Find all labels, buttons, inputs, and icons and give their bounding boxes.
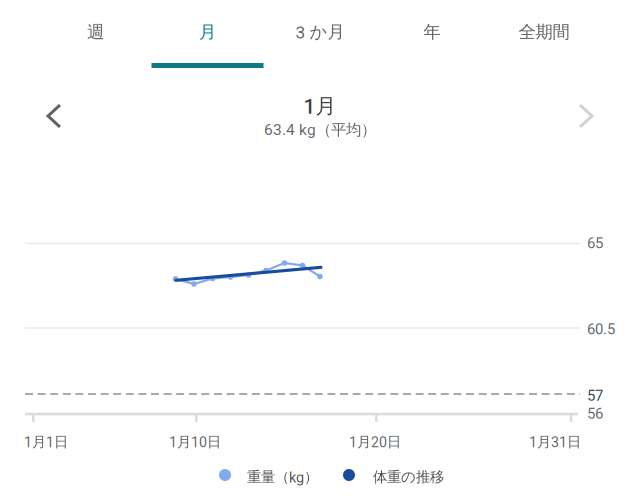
staticText: 体重の推移 — [373, 468, 444, 486]
staticText: 全期間 — [518, 21, 569, 43]
button[interactable]: 次の期間 — [557, 90, 609, 142]
staticText: 3 か月 — [295, 21, 344, 43]
button[interactable]: 重量（kg） — [212, 462, 238, 488]
button[interactable]: 3 か月 — [264, 0, 376, 70]
staticText: 57 — [587, 387, 603, 404]
staticText: 1月 — [303, 93, 336, 119]
staticText: 月 — [199, 21, 216, 43]
staticText: 1月31日 — [529, 433, 581, 451]
staticText: 週 — [87, 21, 104, 43]
staticText: 56 — [587, 405, 603, 422]
button[interactable]: 週 — [39, 0, 151, 70]
button[interactable]: 月 — [151, 0, 263, 70]
button[interactable]: 前の期間 — [31, 90, 83, 142]
staticText: 年 — [423, 21, 440, 43]
staticText: 65 — [587, 234, 603, 252]
staticText: 60.5 — [587, 320, 615, 338]
staticText: 63.4 kg（平均） — [264, 120, 376, 139]
staticText: 1月1日 — [24, 433, 68, 451]
staticText: 重量（kg） — [247, 468, 318, 486]
button[interactable]: 年 — [376, 0, 488, 70]
button[interactable]: 全期間 — [488, 0, 600, 70]
staticText: 1月20日 — [349, 433, 401, 451]
staticText: 1月10日 — [169, 433, 221, 451]
button[interactable]: 体重の推移 — [336, 462, 362, 488]
